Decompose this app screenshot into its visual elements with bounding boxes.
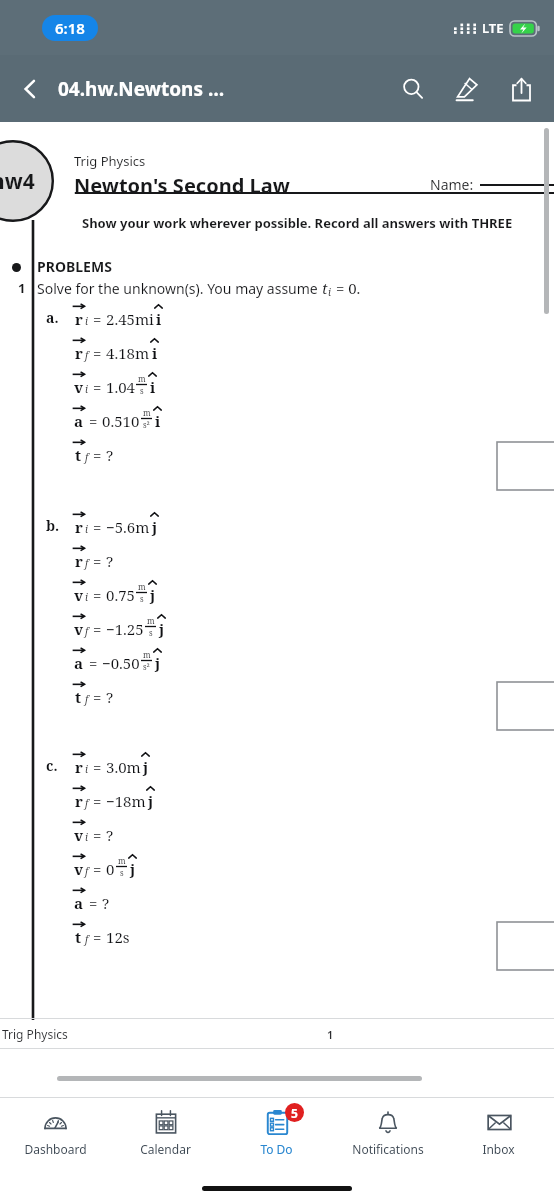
staticText: 6:18	[55, 18, 85, 38]
staticText: a	[74, 411, 84, 431]
staticText: LTE	[482, 19, 504, 37]
staticText: Newton's Second Law	[74, 172, 290, 199]
staticText: s²	[143, 419, 150, 430]
staticText: 0.510	[102, 411, 140, 431]
staticText: i	[150, 377, 156, 397]
staticText: s	[140, 385, 144, 396]
staticText: hw4	[0, 167, 35, 196]
staticText: a	[74, 653, 84, 673]
staticText: f	[85, 556, 89, 570]
button[interactable]: Calendar	[110, 1098, 221, 1170]
staticText: t	[75, 927, 82, 947]
staticText: =	[89, 687, 106, 707]
staticText: Solve for the unknown(s). You may assume	[37, 279, 322, 298]
staticText: v	[74, 619, 84, 639]
staticText: 0.75	[106, 585, 135, 605]
staticText: i	[85, 762, 89, 776]
staticText: f	[85, 864, 89, 878]
staticText: v	[74, 585, 84, 605]
staticText: j	[159, 619, 165, 639]
staticText: b.	[46, 516, 60, 535]
button[interactable]: Search	[392, 68, 434, 110]
staticText: j	[143, 757, 149, 777]
staticText: m	[147, 615, 155, 626]
staticText: f	[85, 932, 89, 946]
staticText: =	[89, 927, 106, 947]
staticText: Inbox	[482, 1141, 515, 1157]
staticText: Dashboard	[24, 1141, 87, 1157]
staticText: =	[89, 825, 106, 845]
staticText: f	[85, 348, 89, 362]
staticText: =	[89, 585, 106, 605]
staticText: 12s	[106, 927, 130, 947]
staticText: f	[85, 692, 89, 706]
staticText: i	[85, 314, 89, 328]
staticText: m	[143, 407, 151, 418]
staticText: v	[74, 377, 84, 397]
staticText: 04.hw.Newtons Secon...	[58, 76, 225, 102]
staticText: i	[152, 343, 158, 363]
staticText: =	[89, 619, 106, 639]
staticText: r	[75, 343, 83, 363]
staticText: t	[322, 278, 328, 298]
button[interactable]: Back	[10, 69, 50, 109]
staticText: i	[156, 309, 162, 329]
staticText: To Do	[260, 1141, 293, 1157]
staticText: j	[150, 585, 156, 605]
button[interactable]: Dashboard	[0, 1098, 110, 1170]
staticText: =	[89, 757, 106, 777]
button[interactable]: Notifications	[332, 1098, 443, 1170]
button[interactable]: Share	[500, 68, 542, 110]
staticText: =	[89, 377, 106, 397]
staticText: f	[85, 796, 89, 810]
staticText: i	[155, 411, 161, 431]
staticText: 1.04	[106, 377, 135, 397]
staticText: a.	[46, 308, 59, 327]
staticText: a	[74, 893, 84, 913]
staticText: 1	[18, 279, 26, 297]
staticText: ?	[106, 551, 114, 571]
staticText: Show your work wherever possible. Record…	[82, 214, 513, 232]
staticText: PROBLEMS	[37, 257, 112, 276]
staticText: =	[89, 445, 106, 465]
button[interactable]: 5	[221, 1098, 332, 1170]
staticText: r	[75, 517, 83, 537]
staticText: Trig Physics	[74, 152, 146, 170]
staticText: =	[89, 791, 106, 811]
staticText: f	[85, 450, 89, 464]
staticText: i	[85, 830, 89, 844]
staticText: i	[85, 590, 89, 604]
staticText: =	[89, 859, 106, 879]
staticText: t	[75, 445, 82, 465]
staticText: c.	[46, 756, 58, 775]
staticText: t	[75, 687, 82, 707]
staticText: ?	[106, 687, 114, 707]
staticText: s	[120, 867, 124, 878]
staticText: m	[138, 373, 146, 384]
staticText: s²	[143, 661, 150, 672]
button[interactable]: Annotate	[446, 68, 488, 110]
staticText: 2.45mi	[106, 309, 154, 329]
staticText: v	[74, 825, 84, 845]
staticText: m	[138, 581, 146, 592]
staticText: =	[89, 343, 106, 363]
staticText: v	[74, 859, 84, 879]
staticText: ?	[106, 445, 114, 465]
staticText: Name:	[430, 175, 474, 194]
staticText: i	[85, 522, 89, 536]
button[interactable]: Inbox	[443, 1098, 554, 1170]
staticText: j	[152, 517, 158, 537]
staticText: =	[89, 517, 106, 537]
staticText: −18m	[106, 791, 146, 811]
staticText: s	[149, 627, 153, 638]
staticText: 5	[291, 1105, 298, 1121]
staticText: s	[140, 593, 144, 604]
staticText: r	[75, 757, 83, 777]
staticText: Notifications	[352, 1141, 424, 1157]
staticText: =	[85, 893, 102, 913]
staticText: r	[75, 309, 83, 329]
staticText: −0.50	[102, 653, 140, 673]
staticText: =	[89, 551, 106, 571]
staticText: j	[155, 653, 161, 673]
staticText: =	[85, 653, 102, 673]
